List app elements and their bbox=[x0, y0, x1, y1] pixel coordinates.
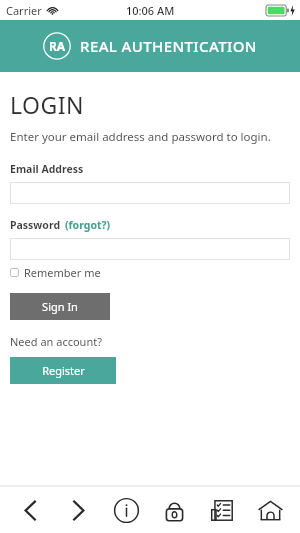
button[interactable] bbox=[10, 238, 290, 260]
staticText: Register bbox=[42, 363, 85, 378]
staticText: Sign In bbox=[42, 299, 78, 314]
button[interactable]: Home bbox=[248, 488, 292, 532]
button[interactable]: Forward bbox=[56, 488, 100, 532]
staticText: LOGIN bbox=[10, 89, 85, 120]
staticText: Enter your email address and password to… bbox=[10, 129, 271, 145]
button[interactable]: Back bbox=[8, 488, 52, 532]
button[interactable] bbox=[10, 182, 290, 204]
staticText: Need an account? bbox=[10, 334, 102, 349]
staticText: 10:06 AM bbox=[126, 3, 175, 18]
button[interactable]: Info bbox=[104, 488, 148, 532]
button[interactable]: Register bbox=[10, 357, 116, 384]
staticText: Password bbox=[10, 218, 61, 232]
staticText: Email Address bbox=[10, 162, 84, 176]
button[interactable]: Sign In bbox=[10, 293, 110, 320]
staticText: Carrier bbox=[6, 3, 42, 18]
button[interactable]: Checklist bbox=[200, 488, 244, 532]
staticText: Remember me bbox=[24, 265, 101, 280]
button[interactable]: Secure bbox=[152, 488, 196, 532]
staticText: REAL AUTHENTICATION bbox=[80, 36, 257, 56]
staticText: RA bbox=[49, 38, 65, 54]
button[interactable]: (forgot?) bbox=[65, 218, 111, 232]
staticText: (forgot?) bbox=[65, 218, 111, 232]
button[interactable]: Remember me bbox=[10, 265, 101, 280]
